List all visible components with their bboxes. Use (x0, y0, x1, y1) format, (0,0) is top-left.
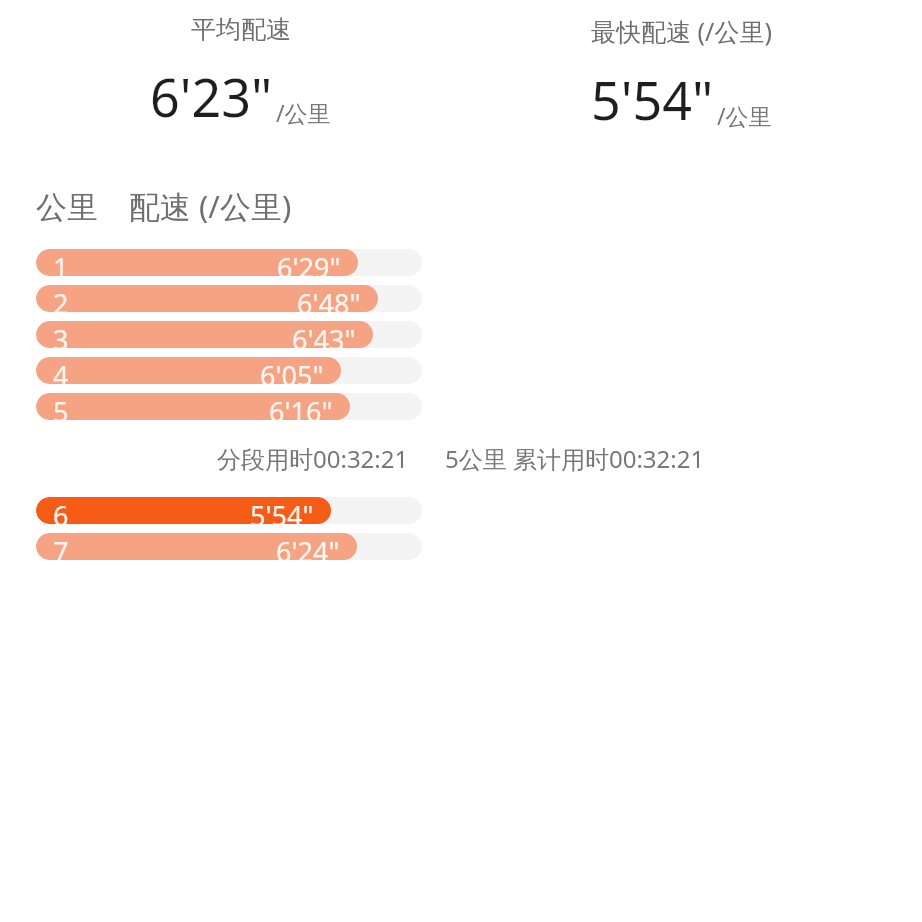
staticText: 6'29" (277, 249, 341, 276)
staticText: /公里 (717, 100, 772, 131)
button[interactable]: 1 (36, 249, 422, 276)
staticText: 5公里 累计用时00:32:21 (445, 442, 705, 475)
staticText: 6'05" (260, 357, 324, 384)
staticText: 6'43" (292, 321, 356, 348)
staticText: 5 (53, 393, 69, 420)
staticText: /公里 (276, 97, 331, 128)
button[interactable]: 6 (36, 497, 422, 524)
staticText: 6'24" (276, 533, 340, 560)
staticText: 6 (53, 497, 69, 524)
staticText: 1 (53, 249, 69, 276)
staticText: 4 (53, 357, 69, 384)
staticText: 平均配速 (191, 14, 291, 45)
button[interactable]: 7 (36, 533, 422, 560)
staticText: 6'48" (297, 285, 361, 312)
staticText: 5'54" (591, 64, 714, 135)
staticText: 3 (53, 321, 69, 348)
staticText: 公里 配速 (/公里) (36, 185, 292, 227)
staticText: 6'16" (269, 393, 333, 420)
staticText: 最快配速 (/公里) (591, 14, 772, 48)
button[interactable]: 5 (36, 393, 422, 420)
button[interactable]: 4 (36, 357, 422, 384)
button[interactable]: 3 (36, 321, 422, 348)
staticText: 分段用时00:32:21 (217, 442, 409, 475)
staticText: 7 (53, 533, 69, 560)
button[interactable]: 2 (36, 285, 422, 312)
staticText: 6'23" (150, 61, 273, 132)
staticText: 2 (53, 285, 69, 312)
staticText: 5'54" (250, 497, 314, 524)
